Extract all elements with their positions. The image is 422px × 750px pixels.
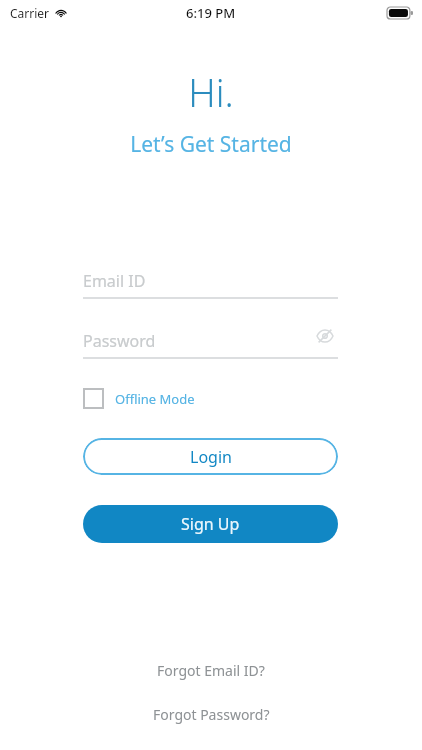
staticText: Hi.: [188, 66, 234, 118]
staticText: Email ID: [83, 270, 146, 292]
staticText: Forgot Email ID?: [157, 661, 265, 680]
staticText: Password: [83, 330, 156, 352]
staticText: 6:19 PM: [186, 4, 236, 22]
button[interactable]: Forgot Email ID?: [147, 658, 275, 683]
button[interactable]: Offline Mode: [83, 386, 195, 411]
button[interactable]: Show password: [312, 323, 338, 349]
staticText: Let’s Get Started: [130, 130, 292, 159]
button[interactable]: Forgot Password?: [143, 702, 280, 727]
staticText: Forgot Password?: [153, 705, 270, 724]
staticText: Sign Up: [181, 513, 240, 535]
button[interactable]: Password: [83, 328, 338, 354]
button[interactable]: Email ID: [83, 268, 338, 294]
staticText: Carrier: [10, 5, 50, 21]
button[interactable]: Sign Up: [83, 505, 338, 543]
staticText: Offline Mode: [115, 390, 195, 408]
staticText: Login: [190, 446, 232, 468]
button[interactable]: Login: [83, 438, 338, 475]
